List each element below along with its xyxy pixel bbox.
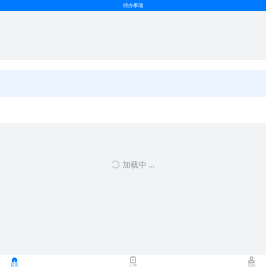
button[interactable]: 订单 xyxy=(118,255,147,268)
staticText: 首页 xyxy=(10,262,18,267)
staticText: 待办事项 xyxy=(123,2,143,9)
button[interactable]: 首页 xyxy=(0,255,29,268)
staticText: 我的 xyxy=(247,263,255,268)
staticText: 订单 xyxy=(129,263,137,268)
button[interactable]: 我的 xyxy=(237,255,266,268)
staticText: 加载中 ... xyxy=(122,159,154,170)
